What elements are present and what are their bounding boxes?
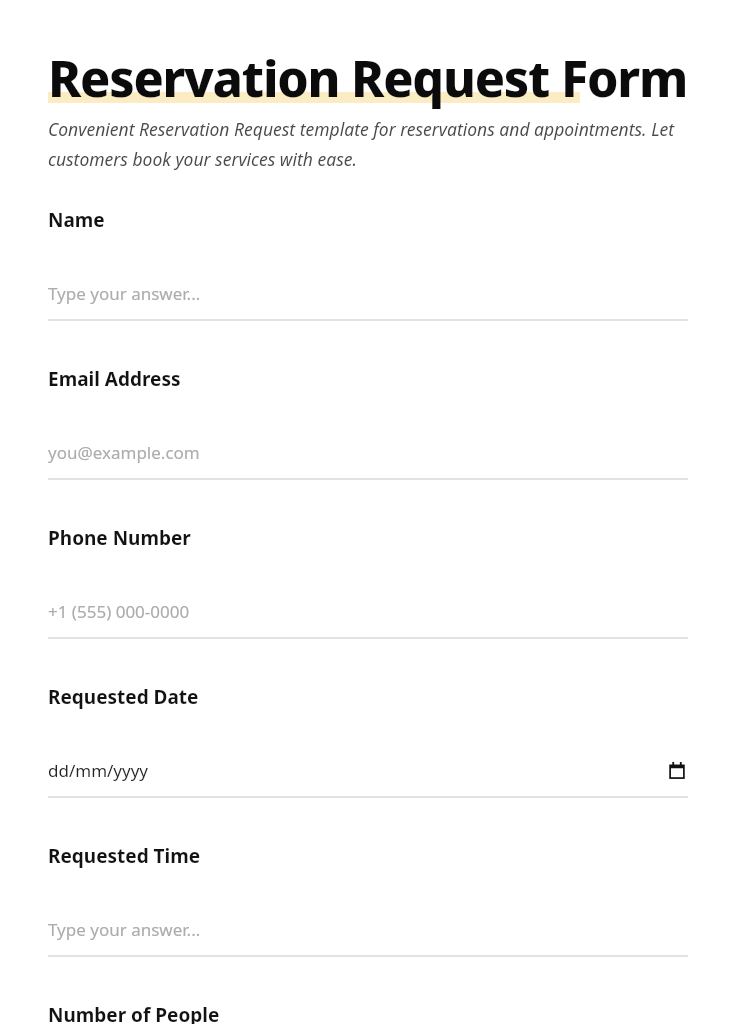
staticText: +1 (555) 000-0000 (48, 600, 688, 623)
button[interactable]: Open date picker (666, 760, 688, 782)
button[interactable]: Type your answer... (48, 280, 688, 321)
staticText: Number of People (48, 1002, 220, 1024)
staticText: Type your answer... (48, 282, 688, 305)
staticText: Phone Number (48, 525, 191, 551)
staticText: dd/mm/yyyy (48, 759, 666, 782)
staticText: Reservation Request Form (48, 44, 688, 112)
staticText: Requested Date (48, 684, 199, 710)
button[interactable]: you@example.com (48, 439, 688, 480)
staticText: Type your answer... (48, 918, 688, 941)
staticText: Requested Time (48, 843, 201, 869)
staticText: Name (48, 207, 105, 233)
staticText: Convenient Reservation Request template … (48, 117, 688, 171)
button[interactable]: Type your answer... (48, 916, 688, 957)
button[interactable]: dd/mm/yyyy (48, 757, 688, 798)
staticText: Email Address (48, 366, 181, 392)
button[interactable]: +1 (555) 000-0000 (48, 598, 688, 639)
staticText: you@example.com (48, 441, 688, 464)
